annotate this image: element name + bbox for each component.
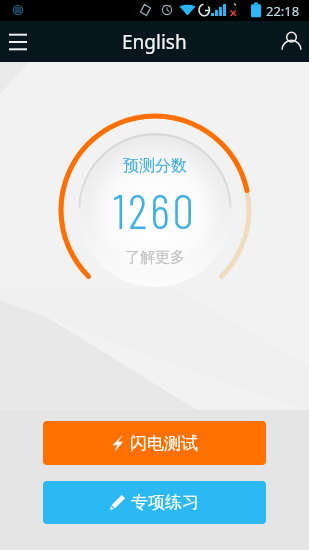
button[interactable]: Menu xyxy=(0,21,36,62)
button[interactable]: Account xyxy=(273,21,309,62)
button[interactable]: 了解更多 xyxy=(125,248,185,267)
staticText: 预测分数 xyxy=(123,156,187,176)
staticText: 22:18 xyxy=(266,2,300,20)
staticText: 了解更多 xyxy=(125,248,185,267)
button[interactable]: 闪电测试 xyxy=(43,421,266,465)
staticText: English xyxy=(122,29,187,55)
button[interactable]: 专项练习 xyxy=(43,481,266,524)
staticText: 专项练习 xyxy=(131,492,199,513)
staticText: 1260 xyxy=(113,181,197,239)
staticText: 闪电测试 xyxy=(130,433,198,454)
